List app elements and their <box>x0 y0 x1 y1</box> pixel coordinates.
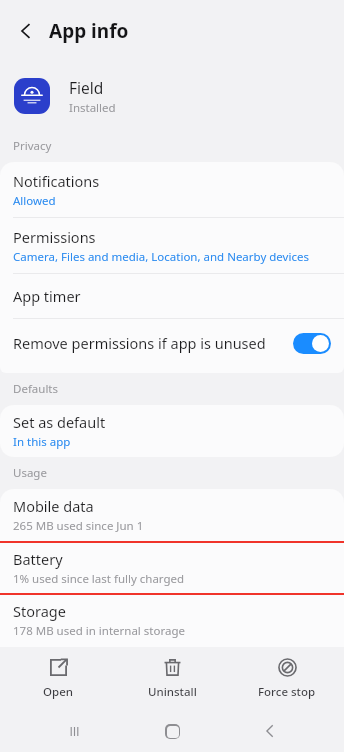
staticText: Notifications <box>13 171 100 191</box>
staticText: Privacy <box>13 138 52 154</box>
staticText: Field <box>69 77 104 98</box>
staticText: Force stop <box>258 684 316 700</box>
staticText: Remove permissions if app is unused <box>13 333 266 353</box>
button[interactable]: Uninstall <box>115 652 229 706</box>
staticText: Mobile data <box>13 496 94 516</box>
button[interactable]: Back <box>11 16 41 46</box>
staticText: Usage <box>13 465 47 481</box>
button[interactable]: Back <box>246 710 294 752</box>
button[interactable]: Battery <box>0 543 344 593</box>
staticText: Defaults <box>13 381 59 397</box>
staticText: App timer <box>13 286 81 306</box>
button[interactable]: App timer <box>0 274 344 318</box>
button[interactable]: Recent apps <box>50 710 98 752</box>
staticText: Storage <box>13 601 66 621</box>
staticText: 265 MB used since Jun 1 <box>13 518 144 534</box>
staticText: Uninstall <box>148 684 197 700</box>
staticText: 178 MB used in internal storage <box>13 623 185 639</box>
staticText: Open <box>43 684 73 700</box>
button[interactable]: Remove permissions toggle <box>293 333 331 354</box>
button[interactable]: Open <box>1 652 115 706</box>
staticText: Allowed <box>13 193 56 209</box>
staticText: Camera, Files and media, Location, and N… <box>13 249 309 265</box>
staticText: Battery <box>13 549 63 569</box>
staticText: In this app <box>13 434 71 450</box>
button[interactable]: Notifications <box>0 162 344 217</box>
button[interactable]: Permissions <box>0 218 344 273</box>
staticText: Permissions <box>13 227 96 247</box>
staticText: App info <box>49 18 129 44</box>
button[interactable]: Field <box>0 62 344 130</box>
button[interactable]: Set as default <box>0 405 344 457</box>
button[interactable]: Storage <box>0 595 344 645</box>
staticText: 1% used since last fully charged <box>13 571 185 587</box>
staticText: Set as default <box>13 412 106 432</box>
button[interactable]: Remove permissions if app is unused <box>0 319 344 367</box>
button[interactable]: Mobile data <box>0 489 344 541</box>
button[interactable]: Force stop <box>230 652 344 706</box>
button[interactable]: Home <box>148 710 196 752</box>
staticText: Installed <box>69 100 116 116</box>
